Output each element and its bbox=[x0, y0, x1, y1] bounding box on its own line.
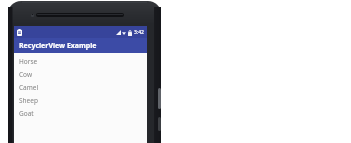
staticText: Sheep bbox=[19, 96, 38, 105]
button[interactable]: RecyclerView Example bbox=[14, 38, 147, 53]
staticText: Goat bbox=[19, 109, 34, 118]
staticText: 3:42 bbox=[134, 29, 144, 36]
staticText: Cow bbox=[19, 70, 33, 79]
staticText: RecyclerView Example bbox=[19, 41, 97, 51]
button[interactable]: Horse bbox=[14, 55, 147, 68]
button[interactable]: Camel bbox=[14, 81, 147, 94]
staticText: Horse bbox=[19, 57, 38, 66]
button[interactable]: Sheep bbox=[14, 94, 147, 107]
staticText: Camel bbox=[19, 83, 39, 92]
button[interactable]: Goat bbox=[14, 107, 147, 120]
button[interactable]: Cow bbox=[14, 68, 147, 81]
